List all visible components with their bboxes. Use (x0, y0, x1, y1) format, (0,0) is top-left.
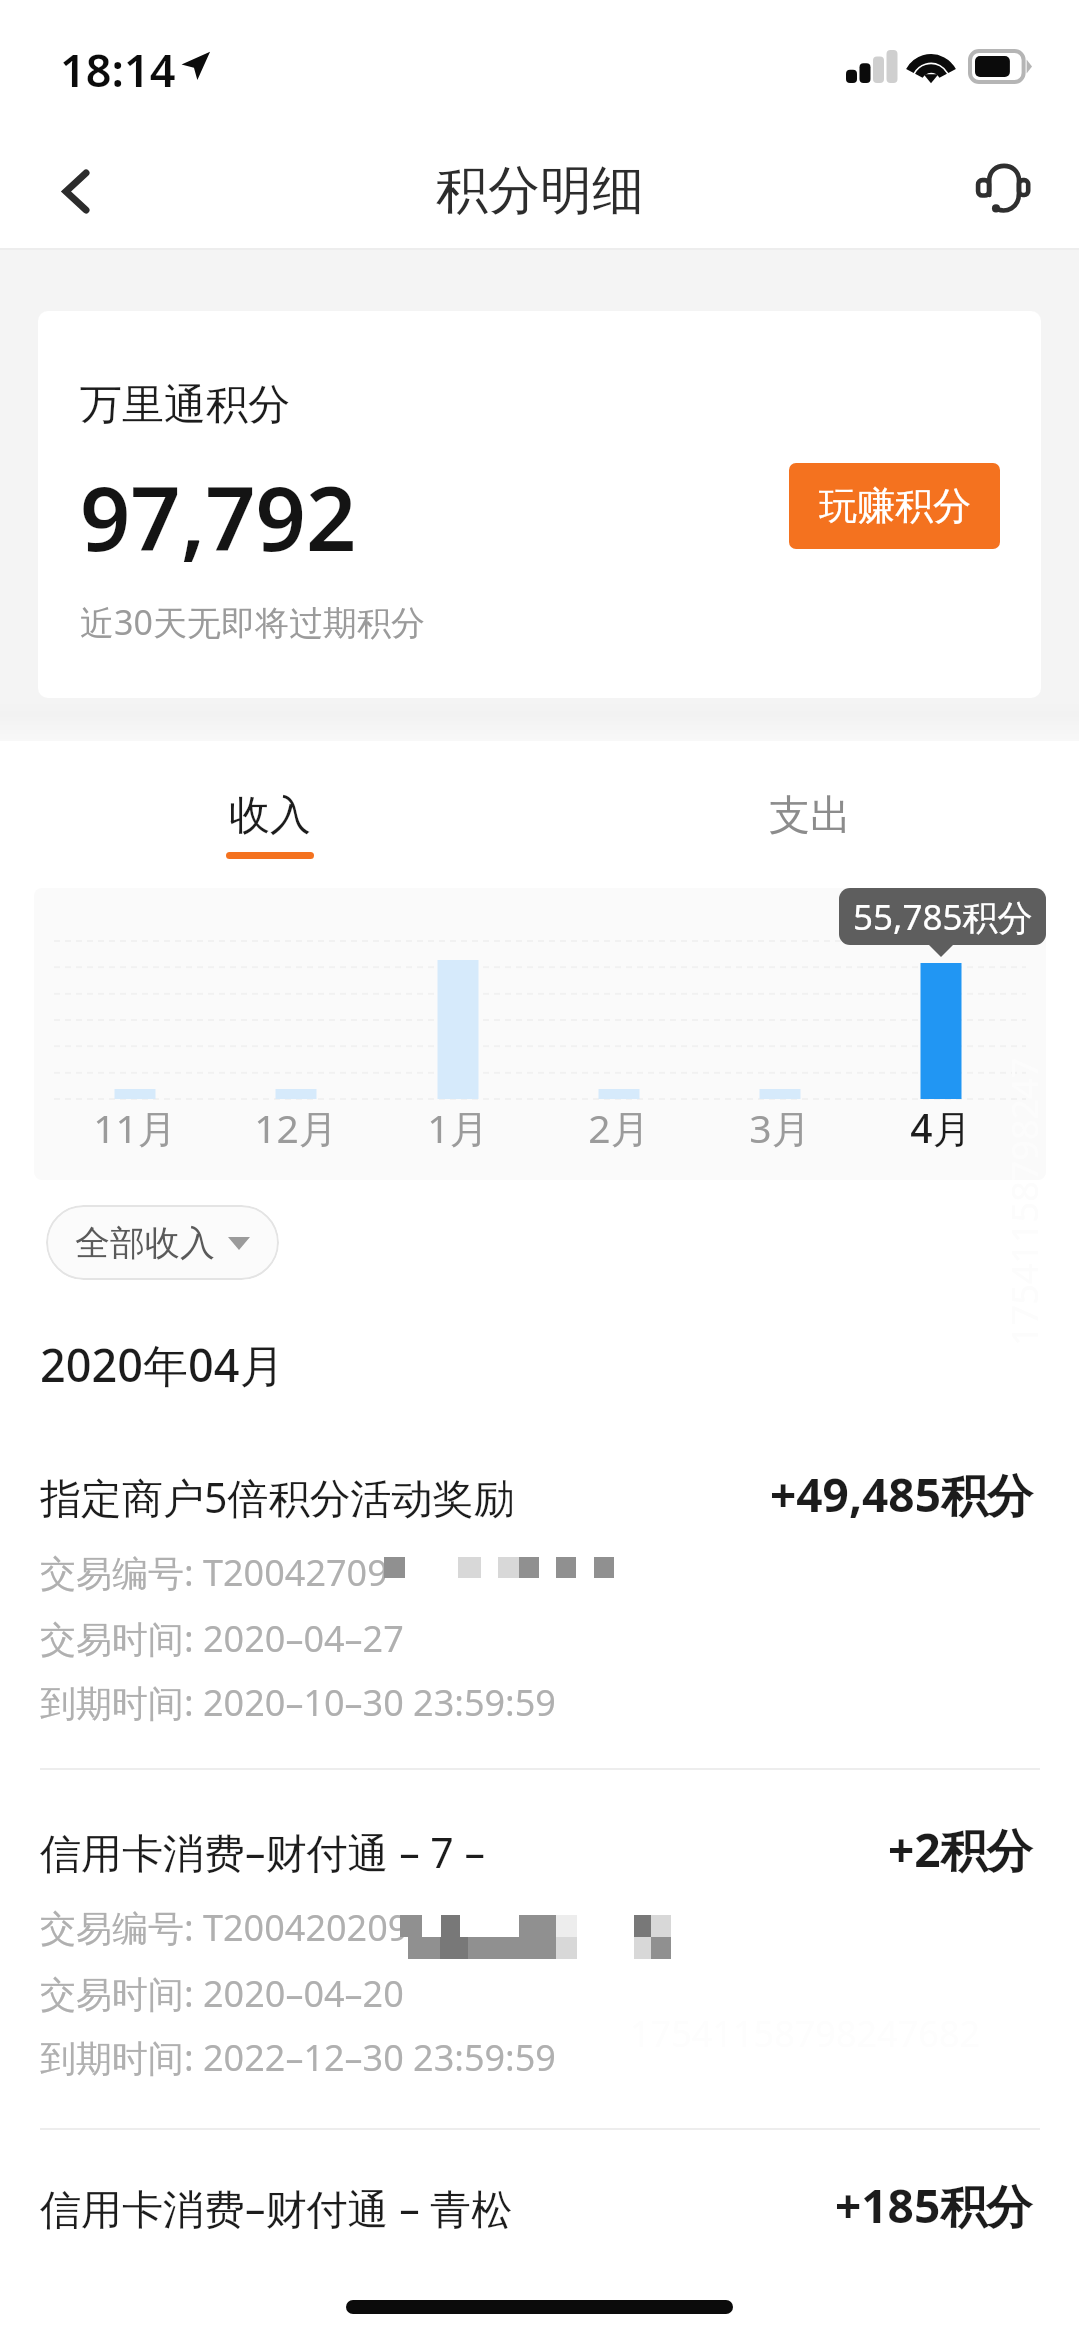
staticText: +49,485积分 (770, 1463, 1033, 1526)
staticText: 交易编号: T20042709 (40, 1548, 388, 1597)
staticText: 18:14 (60, 39, 176, 100)
staticText: 指定商户5倍积分活动奖励 (40, 1469, 515, 1525)
button[interactable]: Customer service (943, 127, 1063, 245)
button[interactable]: 万里通积分 (38, 311, 1041, 698)
staticText: 55,785积分 (853, 893, 1033, 941)
button[interactable]: 指定商户5倍积分活动奖励 (0, 1469, 1079, 1759)
staticText: 到期时间: 2020–10–30 23:59:59 (40, 1678, 556, 1727)
button[interactable]: 11月 (34, 888, 1046, 1180)
button[interactable]: 信用卡消费–财付通 – 青松 (0, 2180, 1079, 2260)
staticText: 收入 (229, 790, 311, 842)
button[interactable]: 收入 (0, 753, 540, 883)
button[interactable]: 支出 (540, 753, 1079, 883)
staticText: 交易时间: 2020–04–27 (40, 1614, 404, 1663)
staticText: +185积分 (835, 2174, 1033, 2237)
staticText: 信用卡消费–财付通 – 青松 (40, 2180, 513, 2236)
staticText: 支出 (769, 790, 851, 842)
staticText: 4月 (910, 1101, 972, 1154)
staticText: 到期时间: 2022–12–30 23:59:59 (40, 2033, 556, 2082)
staticText: 交易编号: T200420209 (40, 1903, 409, 1952)
button[interactable]: Back (16, 132, 136, 250)
staticText: 玩赚积分 (819, 482, 971, 530)
staticText: 2020年04月 (40, 1334, 285, 1395)
staticText: +2积分 (888, 1818, 1033, 1881)
staticText: 3月 (749, 1101, 811, 1154)
staticText: 交易时间: 2020–04–20 (40, 1969, 404, 2018)
staticText: 信用卡消费–财付通 – 7 – (40, 1824, 485, 1880)
button[interactable]: 信用卡消费–财付通 – 7 – (0, 1824, 1079, 2114)
staticText: 积分明细 (436, 158, 644, 224)
button[interactable]: 玩赚积分 (789, 463, 1000, 549)
staticText: 12月 (254, 1101, 338, 1154)
staticText: 万里通积分 (80, 379, 290, 432)
staticText: 97,792 (80, 457, 357, 577)
staticText: 1月 (427, 1101, 489, 1154)
staticText: 近30天无即将过期积分 (80, 599, 425, 645)
button[interactable]: 全部收入 (46, 1205, 279, 1280)
staticText: 11月 (93, 1101, 177, 1154)
staticText: 2月 (588, 1101, 650, 1154)
staticText: 全部收入 (75, 1221, 215, 1265)
